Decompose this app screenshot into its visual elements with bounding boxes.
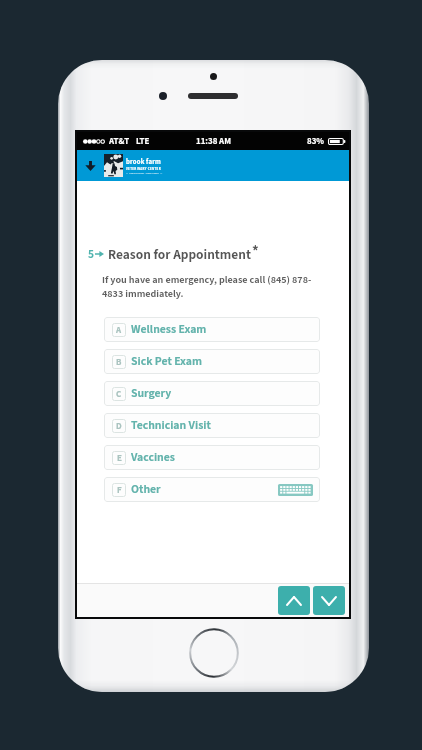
button[interactable]: Next question (313, 586, 345, 615)
staticText: D (116, 420, 122, 433)
staticText: — PATCHOGUE · NEW YORK — (126, 172, 163, 175)
button[interactable]: C (104, 381, 320, 406)
staticText: C (116, 388, 122, 401)
button[interactable]: Collapse (78, 150, 102, 181)
staticText: AT&T (109, 135, 130, 148)
staticText: Other (131, 481, 161, 498)
button[interactable]: F (104, 477, 320, 502)
staticText: F (117, 484, 122, 497)
staticText: * (252, 241, 259, 259)
button[interactable]: A (104, 317, 320, 342)
staticText: Technician Visit (131, 417, 211, 434)
staticText: If you have an emergency, please call (8… (102, 273, 312, 301)
staticText: A (116, 324, 122, 337)
staticText: E (117, 452, 122, 465)
staticText: LTE (136, 135, 150, 148)
staticText: 5 (88, 246, 94, 262)
staticText: VETERINARY CENTER (126, 167, 161, 172)
button[interactable]: brook farm (104, 150, 163, 181)
staticText: 11:38 AM (196, 135, 231, 148)
staticText: 83% (307, 135, 325, 148)
button[interactable]: D (104, 413, 320, 438)
staticText: Vaccines (131, 449, 175, 466)
staticText: Surgery (131, 385, 172, 402)
button[interactable]: B (104, 349, 320, 374)
staticText: Reason for Appointment (108, 245, 251, 263)
staticText: Wellness Exam (131, 321, 207, 338)
staticText: B (116, 356, 122, 369)
button[interactable]: Show keyboard (278, 484, 313, 496)
button[interactable]: Previous question (278, 586, 310, 615)
staticText: Sick Pet Exam (131, 353, 203, 370)
staticText: brook farm (126, 157, 161, 167)
button[interactable]: E (104, 445, 320, 470)
